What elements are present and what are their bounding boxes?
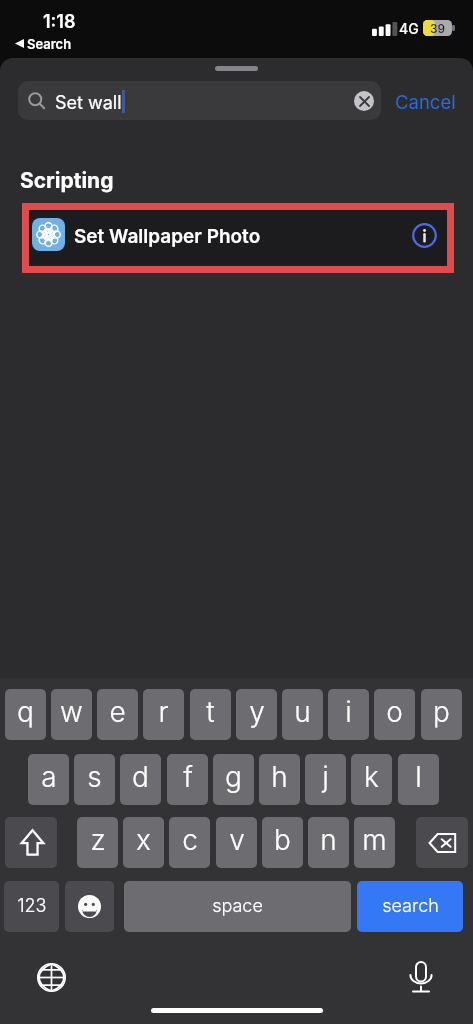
staticText: a: [41, 760, 57, 794]
staticText: l: [415, 760, 422, 794]
button[interactable]: d: [120, 754, 161, 805]
staticText: f: [183, 760, 193, 794]
staticText: q: [17, 695, 34, 729]
button[interactable]: z: [77, 817, 118, 868]
button[interactable]: x: [123, 817, 164, 868]
button[interactable]: Shift: [5, 817, 57, 868]
staticText: c: [182, 823, 198, 857]
staticText: search: [382, 895, 439, 917]
button[interactable]: e: [97, 689, 138, 740]
button[interactable]: a: [28, 754, 69, 805]
button[interactable]: Backspace: [416, 817, 468, 868]
button[interactable]: p: [421, 689, 462, 740]
staticText: j: [322, 760, 329, 794]
button[interactable]: Set wall: [18, 81, 381, 120]
button[interactable]: c: [169, 817, 210, 868]
button[interactable]: k: [351, 754, 392, 805]
button[interactable]: r: [143, 689, 184, 740]
button[interactable]: u: [282, 689, 323, 740]
button[interactable]: g: [213, 754, 254, 805]
staticText: g: [225, 760, 242, 794]
button[interactable]: y: [236, 689, 277, 740]
staticText: p: [433, 695, 450, 729]
staticText: 4G: [399, 20, 419, 37]
button[interactable]: o: [374, 689, 415, 740]
staticText: y: [249, 695, 265, 729]
button[interactable]: w: [51, 689, 92, 740]
button[interactable]: q: [5, 689, 46, 740]
button[interactable]: n: [308, 817, 349, 868]
button[interactable]: f: [167, 754, 208, 805]
staticText: Scripting: [20, 168, 114, 193]
button[interactable]: m: [354, 817, 395, 868]
button[interactable]: l: [398, 754, 439, 805]
staticText: v: [229, 823, 245, 857]
button[interactable]: Cancel: [388, 84, 463, 120]
staticText: 39: [430, 21, 446, 36]
staticText: r: [158, 695, 169, 729]
button[interactable]: s: [74, 754, 115, 805]
staticText: 123: [17, 895, 47, 917]
staticText: b: [274, 823, 291, 857]
button[interactable]: j: [305, 754, 346, 805]
button[interactable]: h: [259, 754, 300, 805]
staticText: e: [109, 695, 126, 729]
staticText: w: [60, 695, 83, 729]
button[interactable]: Info: [411, 222, 438, 249]
staticText: h: [271, 760, 288, 794]
button[interactable]: Emoji: [65, 881, 114, 932]
staticText: d: [132, 760, 149, 794]
staticText: n: [320, 823, 337, 857]
button[interactable]: Dictate: [403, 959, 439, 995]
staticText: i: [345, 695, 352, 729]
button[interactable]: i: [328, 689, 369, 740]
staticText: k: [364, 760, 379, 794]
staticText: 1:18: [43, 11, 76, 33]
staticText: o: [386, 695, 403, 729]
staticText: space: [212, 895, 263, 917]
button[interactable]: v: [216, 817, 257, 868]
button[interactable]: t: [190, 689, 231, 740]
staticText: t: [206, 695, 215, 729]
staticText: Search: [27, 36, 72, 52]
staticText: Set wall: [55, 92, 122, 114]
button[interactable]: Switch keyboard: [33, 959, 70, 996]
staticText: u: [294, 695, 311, 729]
button[interactable]: Clear text: [354, 91, 374, 111]
button[interactable]: 123: [4, 881, 59, 932]
staticText: m: [362, 823, 387, 857]
button[interactable]: b: [262, 817, 303, 868]
staticText: Cancel: [395, 91, 456, 113]
button[interactable]: search: [357, 881, 463, 932]
staticText: s: [87, 760, 102, 794]
staticText: x: [136, 823, 151, 857]
button[interactable]: Set Wallpaper Photo: [29, 210, 447, 266]
staticText: Set Wallpaper Photo: [74, 225, 261, 248]
button[interactable]: space: [124, 881, 351, 932]
staticText: z: [90, 823, 106, 857]
